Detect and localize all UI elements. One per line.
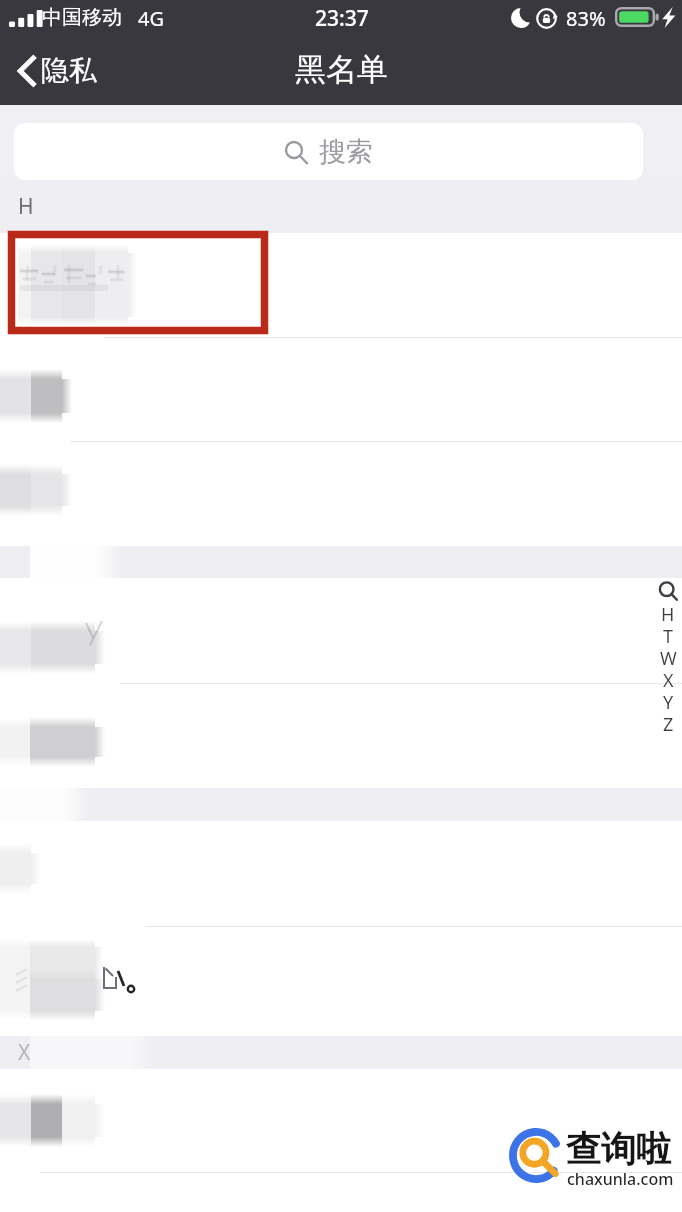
staticText: X — [663, 668, 674, 690]
staticText: H — [661, 602, 675, 624]
button[interactable] — [0, 442, 682, 546]
staticText: W — [660, 646, 677, 668]
button[interactable]: Y — [657, 690, 679, 712]
button[interactable]: Back to 隐私 — [0, 45, 111, 96]
button[interactable] — [0, 233, 682, 338]
staticText: T — [663, 624, 674, 646]
button[interactable] — [0, 684, 682, 788]
button[interactable] — [0, 1069, 682, 1173]
staticText: 中国移动 — [42, 5, 122, 30]
button[interactable]: W — [657, 646, 679, 668]
staticText: chaxunla.com — [567, 1168, 674, 1190]
button[interactable]: Search index — [657, 580, 679, 602]
staticText: 23:37 — [315, 4, 369, 33]
staticText: Z — [663, 712, 674, 734]
staticText: 隐私 — [41, 53, 97, 88]
button[interactable] — [0, 338, 682, 442]
button[interactable]: X — [657, 668, 679, 690]
button[interactable] — [0, 578, 682, 684]
button[interactable]: 搜索 — [14, 123, 643, 180]
staticText: 黑名单 — [295, 50, 388, 89]
staticText: Y — [663, 690, 674, 712]
staticText: H — [18, 192, 34, 221]
staticText: 4G — [138, 5, 164, 32]
button[interactable]: H — [657, 602, 679, 624]
staticText: 查询啦 — [566, 1127, 671, 1171]
staticText: 83% — [566, 5, 606, 32]
button[interactable]: T — [657, 624, 679, 646]
button[interactable] — [0, 927, 682, 1036]
staticText: X — [18, 1038, 31, 1067]
staticText: 搜索 — [319, 135, 373, 169]
button[interactable]: Z — [657, 712, 679, 734]
